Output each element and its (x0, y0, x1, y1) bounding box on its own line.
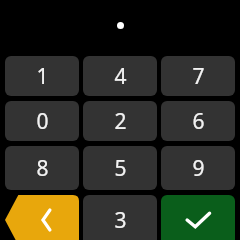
button[interactable]: 6 (161, 101, 235, 141)
button[interactable]: Back (5, 195, 79, 240)
staticText: 2 (114, 107, 127, 136)
button[interactable]: Confirm (161, 195, 235, 240)
staticText: 1 (36, 62, 49, 91)
staticText: 9 (192, 154, 205, 183)
staticText: 0 (36, 107, 49, 136)
staticText: 6 (192, 107, 205, 136)
button[interactable]: 5 (83, 146, 157, 190)
button[interactable]: 4 (83, 56, 157, 96)
button[interactable]: 0 (5, 101, 79, 141)
staticText: 8 (36, 154, 49, 183)
button[interactable]: 2 (83, 101, 157, 141)
button[interactable]: 8 (5, 146, 79, 190)
button[interactable]: 9 (161, 146, 235, 190)
button[interactable]: 1 (5, 56, 79, 96)
button[interactable]: 3 (83, 195, 157, 240)
staticText: 3 (114, 206, 127, 235)
staticText: 5 (114, 154, 127, 183)
staticText: 7 (192, 62, 205, 91)
staticText: 4 (114, 62, 127, 91)
button[interactable]: 7 (161, 56, 235, 96)
